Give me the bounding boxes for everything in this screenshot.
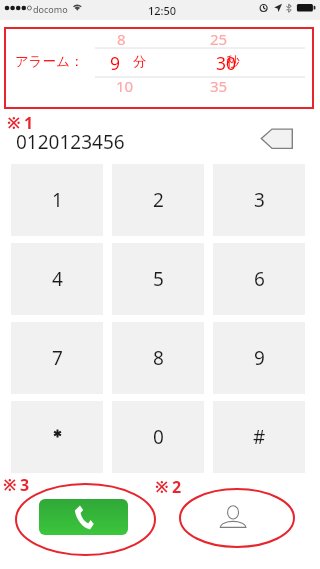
button[interactable]: Backspace	[256, 126, 298, 152]
button[interactable]	[11, 401, 103, 473]
button[interactable]: 4	[11, 243, 103, 315]
button[interactable]: 8	[112, 322, 204, 394]
staticText: 25	[210, 29, 228, 49]
staticText: 35	[210, 76, 228, 96]
button[interactable]: Call	[39, 499, 128, 535]
staticText: ※ 3	[3, 474, 30, 496]
staticText: 8	[153, 345, 164, 371]
staticText: 6	[254, 266, 265, 292]
staticText: ※ 2	[155, 476, 182, 498]
staticText: 4	[52, 266, 63, 292]
staticText: 5	[153, 266, 164, 292]
staticText: 0120123456	[16, 129, 125, 155]
button[interactable]: 3	[213, 164, 305, 236]
button[interactable]: 5	[112, 243, 204, 315]
staticText: ※ 1	[7, 112, 34, 134]
button[interactable]: 1	[11, 164, 103, 236]
staticText: 8	[117, 29, 126, 49]
staticText: 2	[153, 187, 164, 213]
staticText: docomo	[33, 3, 68, 15]
button[interactable]: 0	[112, 401, 204, 473]
button[interactable]: Contacts	[214, 500, 254, 532]
staticText: #	[253, 424, 266, 450]
staticText: 9	[254, 345, 265, 371]
staticText: 30	[216, 51, 237, 75]
staticText: 10	[116, 76, 134, 96]
staticText: 12:50	[148, 3, 177, 18]
staticText: 1	[52, 187, 63, 213]
staticText: 0	[153, 424, 164, 450]
button[interactable]: 7	[11, 322, 103, 394]
staticText: 秒	[226, 53, 240, 70]
staticText: 7	[52, 345, 63, 371]
staticText: 9	[110, 51, 121, 75]
staticText: 分	[133, 53, 147, 70]
button[interactable]: 6	[213, 243, 305, 315]
staticText: アラーム：	[15, 53, 84, 70]
button[interactable]: 2	[112, 164, 204, 236]
button[interactable]: #	[213, 401, 305, 473]
button[interactable]: 9	[213, 322, 305, 394]
staticText: 3	[254, 187, 265, 213]
